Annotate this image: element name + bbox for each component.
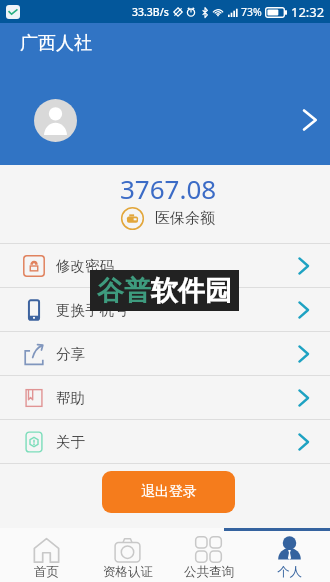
staticText: 退出登录 <box>141 483 197 501</box>
button[interactable]: 资格认证 <box>87 531 168 582</box>
button[interactable]: 帮助 <box>0 376 330 419</box>
staticText: 资格认证 <box>103 564 153 580</box>
staticText: 个人 <box>277 564 302 580</box>
staticText: 分享 <box>56 345 85 363</box>
staticText: 更换手机号 <box>56 301 129 319</box>
staticText: 3767.08 <box>120 171 217 206</box>
staticText: 修改密码 <box>56 257 114 275</box>
button[interactable]: 分享 <box>0 332 330 375</box>
button[interactable]: 公共查询 <box>168 531 249 582</box>
staticText: 33.3B/s <box>132 5 169 19</box>
staticText: 73% <box>241 5 262 19</box>
staticText: 公共查询 <box>184 564 234 580</box>
button[interactable]: 首页 <box>6 531 87 582</box>
staticText: 帮助 <box>56 389 85 407</box>
button[interactable]: Profile details <box>0 65 330 165</box>
staticText: 12:32 <box>291 3 325 21</box>
staticText: 广西人社 <box>20 32 92 55</box>
staticText: 关于 <box>56 433 85 451</box>
staticText: 医保余额 <box>155 209 215 228</box>
button[interactable]: 关于 <box>0 420 330 463</box>
staticText: 谷普 <box>97 274 151 308</box>
staticText: 软件园 <box>151 274 232 308</box>
staticText: 首页 <box>34 564 59 580</box>
button[interactable]: 个人 <box>249 531 330 582</box>
button[interactable]: 更换手机号 <box>0 288 330 331</box>
button[interactable]: 退出登录 <box>102 471 235 513</box>
button[interactable]: 修改密码 <box>0 244 330 287</box>
other: Profile details <box>299 109 321 131</box>
